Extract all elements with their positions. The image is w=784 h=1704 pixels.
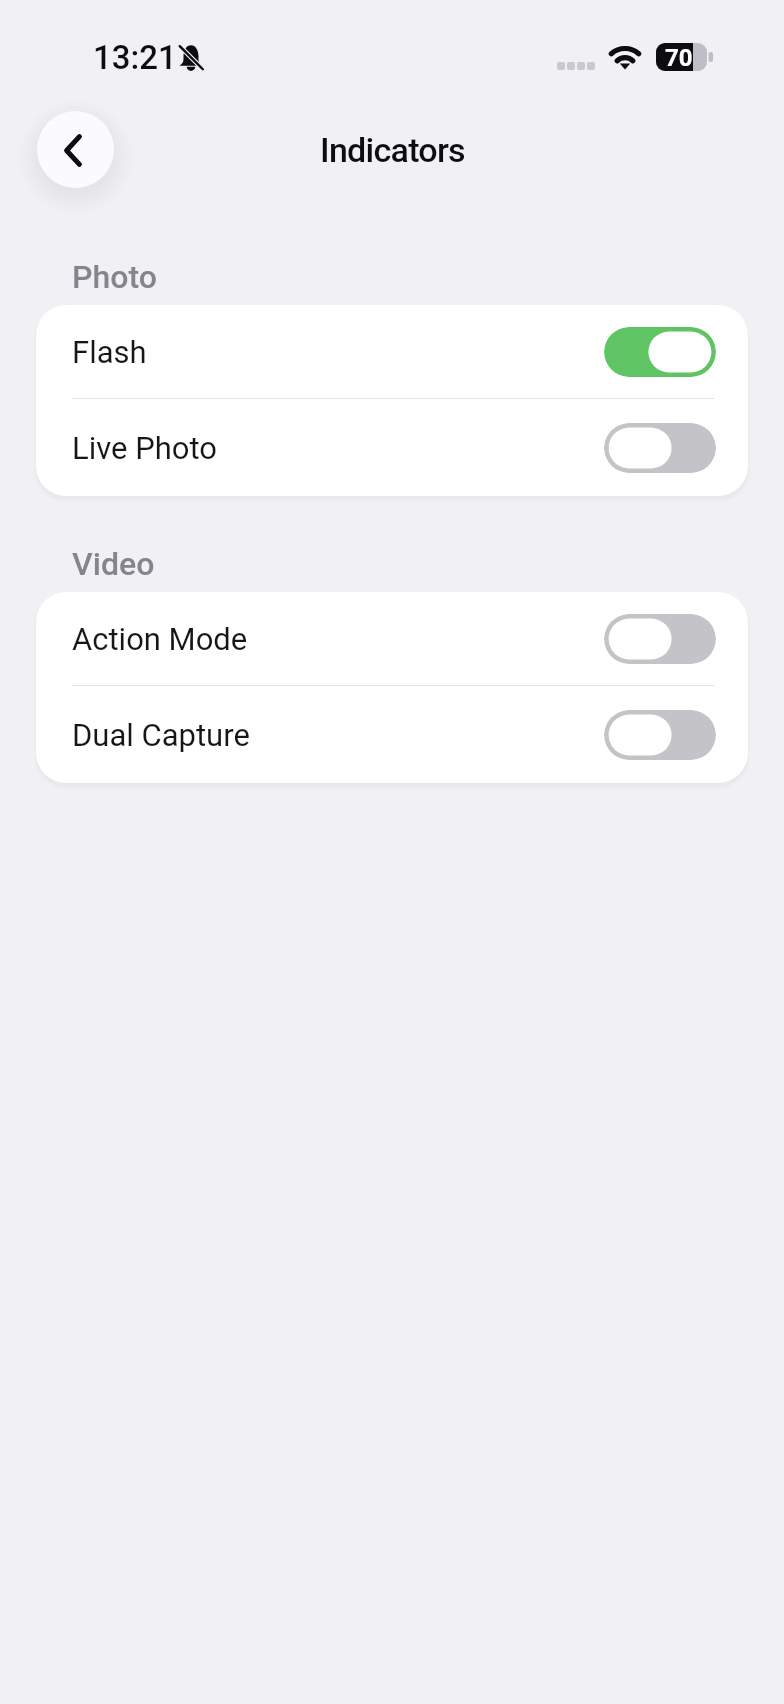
- button[interactable]: Live Photo: [36, 399, 748, 496]
- button[interactable]: Back: [37, 111, 114, 188]
- staticText: 13:21: [93, 38, 177, 77]
- staticText: Photo: [72, 258, 157, 296]
- staticText: Dual Capture: [72, 717, 250, 753]
- button[interactable]: Action Mode off: [604, 614, 716, 664]
- staticText: 70: [665, 44, 693, 71]
- staticText: Live Photo: [72, 430, 218, 466]
- staticText: Video: [72, 545, 155, 583]
- button[interactable]: Action Mode: [36, 592, 748, 685]
- button[interactable]: Dual Capture off: [604, 710, 716, 760]
- button[interactable]: Flash on: [604, 327, 716, 377]
- button[interactable]: Dual Capture: [36, 686, 748, 783]
- staticText: Action Mode: [72, 621, 248, 657]
- staticText: Flash: [72, 334, 147, 370]
- staticText: Indicators: [320, 130, 465, 170]
- button[interactable]: Live Photo off: [604, 423, 716, 473]
- button[interactable]: Flash: [36, 305, 748, 398]
